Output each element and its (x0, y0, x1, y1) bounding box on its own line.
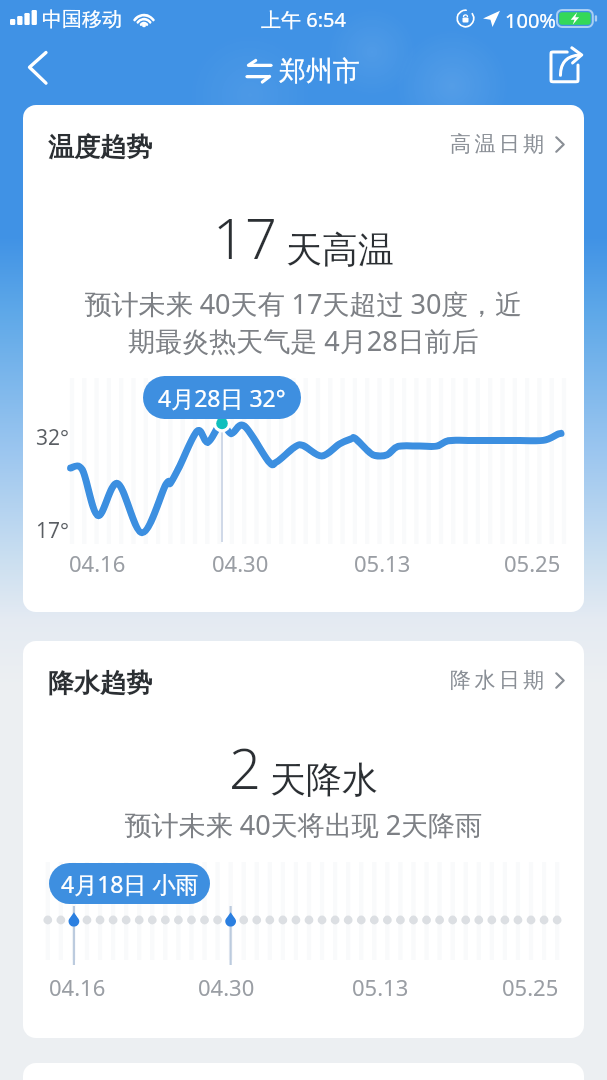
button[interactable]: 郑州市 (247, 54, 360, 88)
staticText: 4月28日 32° (158, 382, 286, 413)
staticText: 降水趋势 (48, 667, 152, 700)
staticText: 04.16 (49, 972, 106, 1002)
staticText: 降水日期 (450, 667, 548, 693)
staticText: 天降水 (270, 757, 378, 802)
button[interactable]: 4月18日 小雨 (49, 863, 210, 904)
staticText: 4月18日 小雨 (61, 868, 199, 899)
staticText: 17 (213, 199, 277, 275)
staticText: 32° (36, 423, 70, 452)
staticText: 2 (229, 729, 261, 805)
staticText: 温度趋势 (48, 131, 152, 164)
staticText: 05.13 (352, 972, 409, 1002)
staticText: 上午 6:54 (261, 6, 346, 33)
staticText: 04.16 (69, 548, 126, 578)
button[interactable]: Back (8, 45, 62, 97)
staticText: 100% (505, 7, 556, 34)
staticText: 05.25 (502, 972, 559, 1002)
staticText: 中国移动 (42, 7, 122, 32)
staticText: 预计未来 40天有 17天超过 30度，近 期最炎热天气是 4月28日前后 (23, 285, 584, 359)
staticText: 05.13 (354, 548, 411, 578)
button[interactable]: 4月28日 32° (143, 376, 301, 419)
staticText: 05.25 (504, 548, 561, 578)
button[interactable]: 降水日期 (445, 662, 570, 698)
staticText: 04.30 (212, 548, 269, 578)
staticText: 郑州市 (279, 54, 360, 88)
staticText: 天高温 (286, 227, 394, 272)
button[interactable]: Share (546, 42, 602, 98)
staticText: 04.30 (198, 972, 255, 1002)
staticText: 高温日期 (450, 131, 548, 157)
staticText: 17° (36, 516, 70, 545)
staticText: 预计未来 40天将出现 2天降雨 (23, 806, 584, 843)
button[interactable]: 高温日期 (445, 126, 570, 162)
